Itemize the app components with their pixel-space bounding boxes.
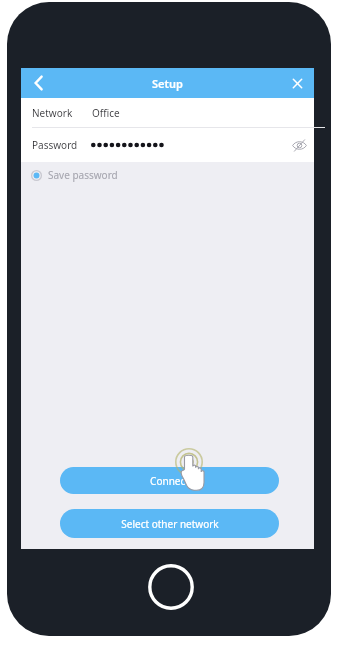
staticText: Setup (152, 76, 183, 91)
staticText: Network (32, 106, 73, 120)
button[interactable]: Select other network (60, 509, 279, 538)
button[interactable]: Show password (284, 128, 314, 162)
staticText: Password (32, 138, 78, 152)
button[interactable]: Back (21, 68, 57, 98)
button[interactable]: Password (21, 128, 314, 162)
button[interactable]: Save password (21, 162, 314, 188)
button[interactable]: Close (280, 68, 314, 98)
button[interactable]: Connect (60, 467, 279, 494)
button[interactable]: Network (21, 98, 314, 128)
staticText: Select other network (121, 517, 219, 531)
staticText: Save password (48, 168, 118, 182)
staticText: Office (92, 106, 120, 120)
staticText: Connect (150, 474, 189, 488)
